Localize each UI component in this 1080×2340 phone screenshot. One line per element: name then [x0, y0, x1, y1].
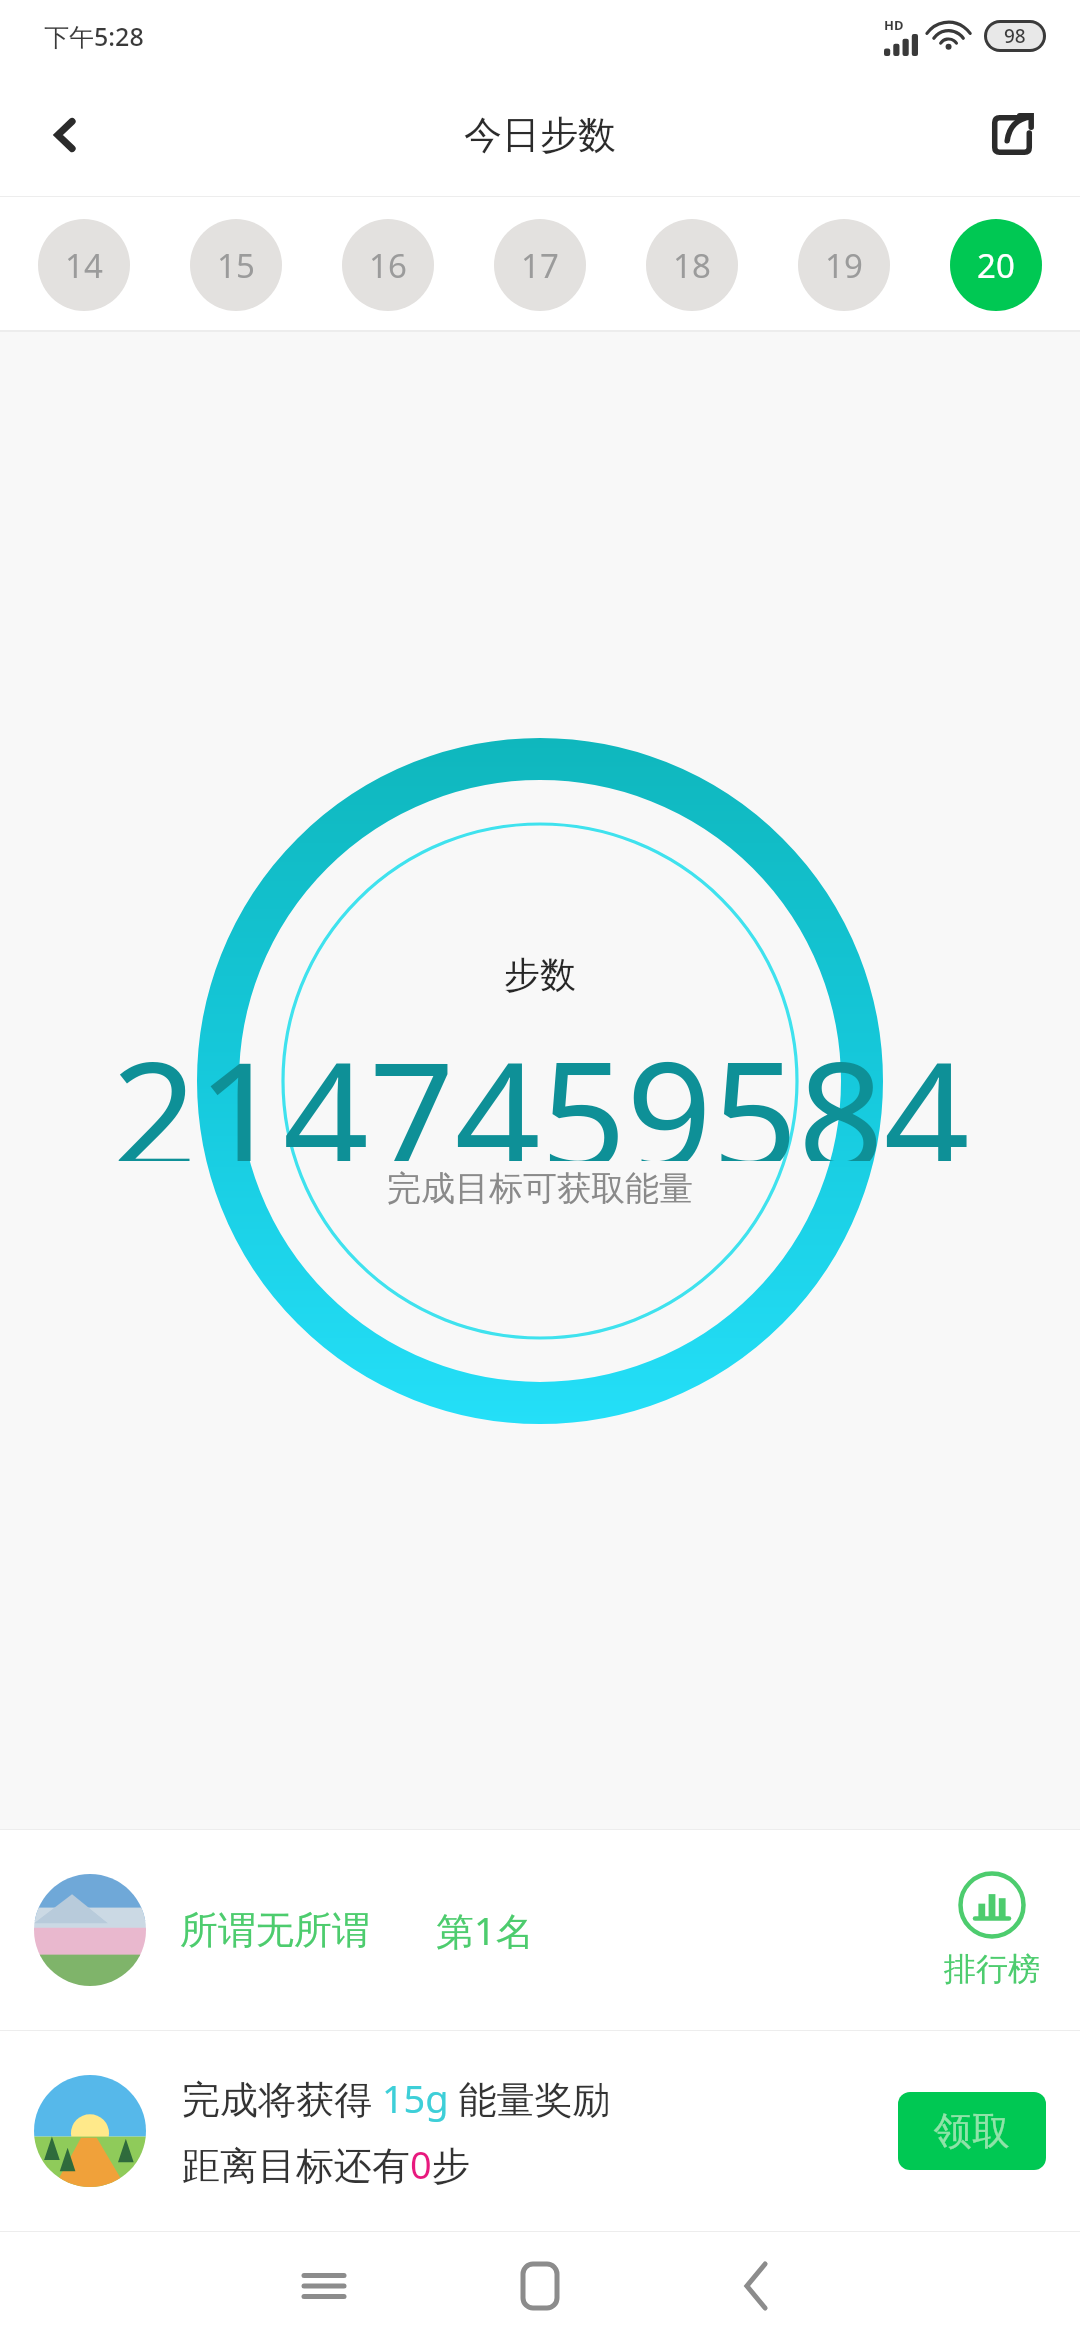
staticText: 领取: [934, 2107, 1010, 2155]
staticText: 98: [1004, 23, 1026, 49]
button[interactable]: 排行榜: [938, 1865, 1046, 1995]
button[interactable]: 17: [494, 219, 586, 311]
staticText: 排行榜: [944, 1949, 1040, 1989]
staticText: 14: [65, 243, 103, 288]
staticText: 距离目标还有0步: [182, 2138, 470, 2190]
staticText: 步数: [504, 952, 576, 997]
staticText: 所谓无所谓: [180, 1906, 370, 1954]
staticText: HD: [884, 16, 904, 34]
staticText: 18: [673, 243, 711, 288]
staticText: 第1名: [436, 1904, 534, 1956]
button[interactable]: 18: [646, 219, 738, 311]
staticText: 19: [825, 243, 863, 288]
staticText: 16: [369, 243, 407, 288]
button[interactable]: Share: [970, 93, 1054, 177]
staticText: 20: [977, 243, 1015, 288]
button[interactable]: 15: [190, 219, 282, 311]
staticText: 下午5:28: [44, 19, 144, 53]
button[interactable]: Back: [24, 93, 108, 177]
staticText: 今日步数: [464, 111, 616, 159]
button[interactable]: Back: [648, 2232, 864, 2340]
button[interactable]: 20: [950, 219, 1042, 311]
button[interactable]: 14: [38, 219, 130, 311]
staticText: 完成将获得 15g 能量奖励: [182, 2072, 611, 2124]
button[interactable]: 所谓无所谓: [0, 1830, 1080, 2030]
button[interactable]: 领取: [898, 2092, 1046, 2170]
button[interactable]: 19: [798, 219, 890, 311]
button[interactable]: 16: [342, 219, 434, 311]
staticText: 2147459584: [111, 1011, 970, 1161]
staticText: 完成目标可获取能量: [387, 1167, 693, 1210]
button[interactable]: Recents: [216, 2232, 432, 2340]
staticText: 15: [217, 243, 255, 288]
button[interactable]: Home: [432, 2232, 648, 2340]
staticText: 17: [521, 243, 559, 288]
